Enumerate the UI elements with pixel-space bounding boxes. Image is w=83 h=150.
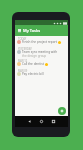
- staticText: TODAY: [18, 37, 27, 41]
- staticText: MAR 09: [18, 69, 28, 73]
- staticText: My Tasks: [23, 28, 41, 33]
- staticText: Pay electric bill: [22, 72, 44, 76]
- staticText: YESTERDAY: [18, 47, 32, 51]
- button[interactable]: Recents: [50, 118, 57, 125]
- button[interactable]: Add task: [58, 107, 66, 115]
- button[interactable]: MAR 12: [15, 59, 68, 69]
- button[interactable]: Back: [26, 118, 33, 125]
- button[interactable]: Menu: [17, 28, 22, 33]
- button[interactable]: Home: [38, 118, 45, 125]
- staticText: Call the dentist: [22, 62, 44, 66]
- staticText: Finish the project report: [22, 40, 57, 44]
- button[interactable]: YESTERDAY: [15, 47, 68, 59]
- staticText: Team sync meeting with: [22, 50, 58, 54]
- button[interactable]: TODAY: [15, 37, 68, 47]
- button[interactable]: MAR 09: [15, 69, 68, 79]
- staticText: MAR 12: [18, 59, 28, 63]
- staticText: the design group: [22, 54, 47, 58]
